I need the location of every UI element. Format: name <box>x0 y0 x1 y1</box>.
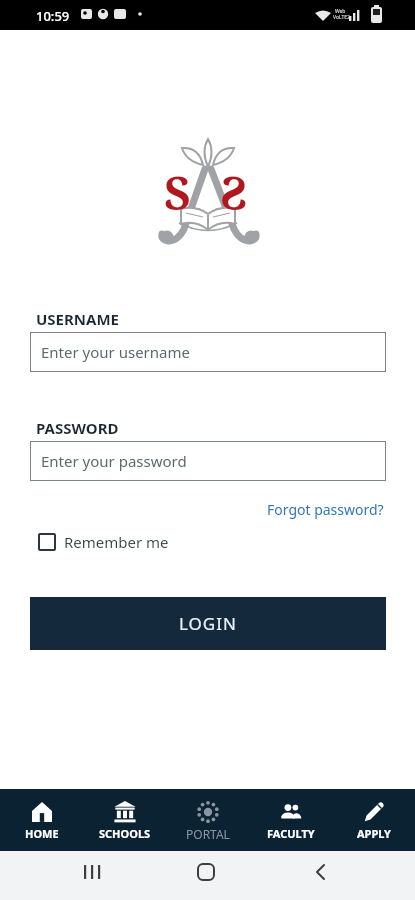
staticText: S <box>220 161 247 224</box>
button[interactable]: FACULTY <box>249 789 332 841</box>
staticText: APPLY <box>357 826 391 841</box>
staticText: FACULTY <box>267 826 315 841</box>
staticText: S <box>164 161 191 224</box>
staticText: VoLTE2 <box>333 14 350 21</box>
staticText: 10:59 <box>36 7 70 25</box>
staticText: SCHOOLS <box>99 826 151 841</box>
staticText: Remember me <box>64 532 169 552</box>
button[interactable]: Enter your password <box>30 441 386 481</box>
button[interactable]: PORTAL <box>166 789 249 842</box>
button[interactable]: SCHOOLS <box>83 789 166 841</box>
staticText: HOME <box>25 826 59 841</box>
button[interactable]: Forgot password? <box>267 500 384 519</box>
button[interactable]: HOME <box>0 789 83 841</box>
staticText: Forgot password? <box>267 500 384 519</box>
staticText: USERNAME <box>36 309 119 329</box>
staticText: PASSWORD <box>36 418 119 438</box>
staticText: LOGIN <box>179 612 237 635</box>
button[interactable]: Enter your username <box>30 332 386 372</box>
staticText: Web <box>335 8 346 15</box>
staticText: Enter your username <box>41 342 190 362</box>
staticText: PORTAL <box>186 826 230 842</box>
button[interactable]: Remember me <box>38 532 169 552</box>
button[interactable]: LOGIN <box>30 597 386 650</box>
staticText: Enter your password <box>41 451 187 471</box>
button[interactable]: APPLY <box>332 789 415 841</box>
